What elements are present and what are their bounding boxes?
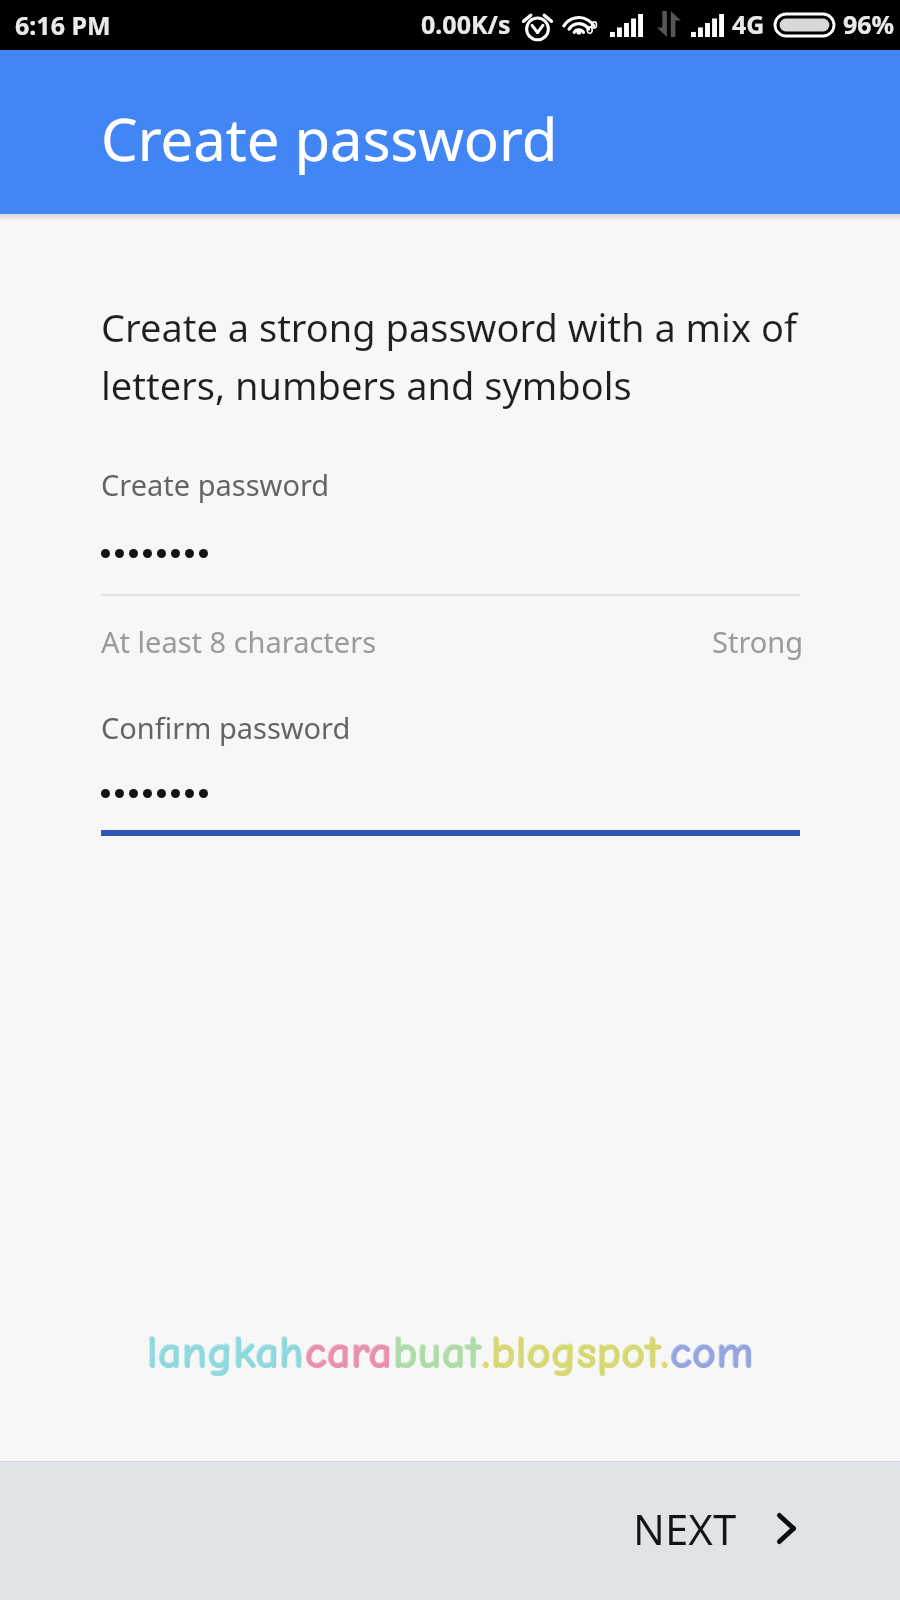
- staticText: langkah: [146, 1325, 304, 1379]
- staticText: 6:16 PM: [15, 8, 111, 42]
- staticText: .: [481, 1325, 490, 1379]
- staticText: Create a strong password with a mix of l…: [101, 301, 797, 411]
- staticText: 96%: [843, 7, 895, 41]
- staticText: .: [660, 1325, 669, 1379]
- staticText: .: [661, 1326, 670, 1380]
- staticText: Strong: [712, 622, 804, 661]
- staticText: Create password: [101, 99, 558, 178]
- staticText: com: [670, 1326, 754, 1380]
- staticText: buat: [393, 1326, 482, 1380]
- button[interactable]: NEXT: [593, 1472, 900, 1589]
- button[interactable]: Confirm password: [101, 708, 800, 836]
- staticText: 0.00K/s: [421, 7, 511, 41]
- staticText: com: [669, 1325, 753, 1379]
- other: Next: [777, 1513, 796, 1544]
- staticText: blogspot: [491, 1326, 661, 1380]
- button[interactable]: Create password: [101, 465, 800, 596]
- staticText: Create password: [101, 465, 330, 504]
- staticText: buat: [392, 1325, 481, 1379]
- staticText: At least 8 characters: [101, 622, 377, 661]
- staticText: NEXT: [633, 1500, 737, 1557]
- staticText: cara: [305, 1326, 393, 1380]
- staticText: 4G: [732, 7, 765, 41]
- staticText: Confirm password: [101, 708, 351, 747]
- staticText: .: [482, 1326, 491, 1380]
- staticText: cara: [304, 1325, 392, 1379]
- staticText: blogspot: [490, 1325, 660, 1379]
- staticText: langkah: [147, 1326, 305, 1380]
